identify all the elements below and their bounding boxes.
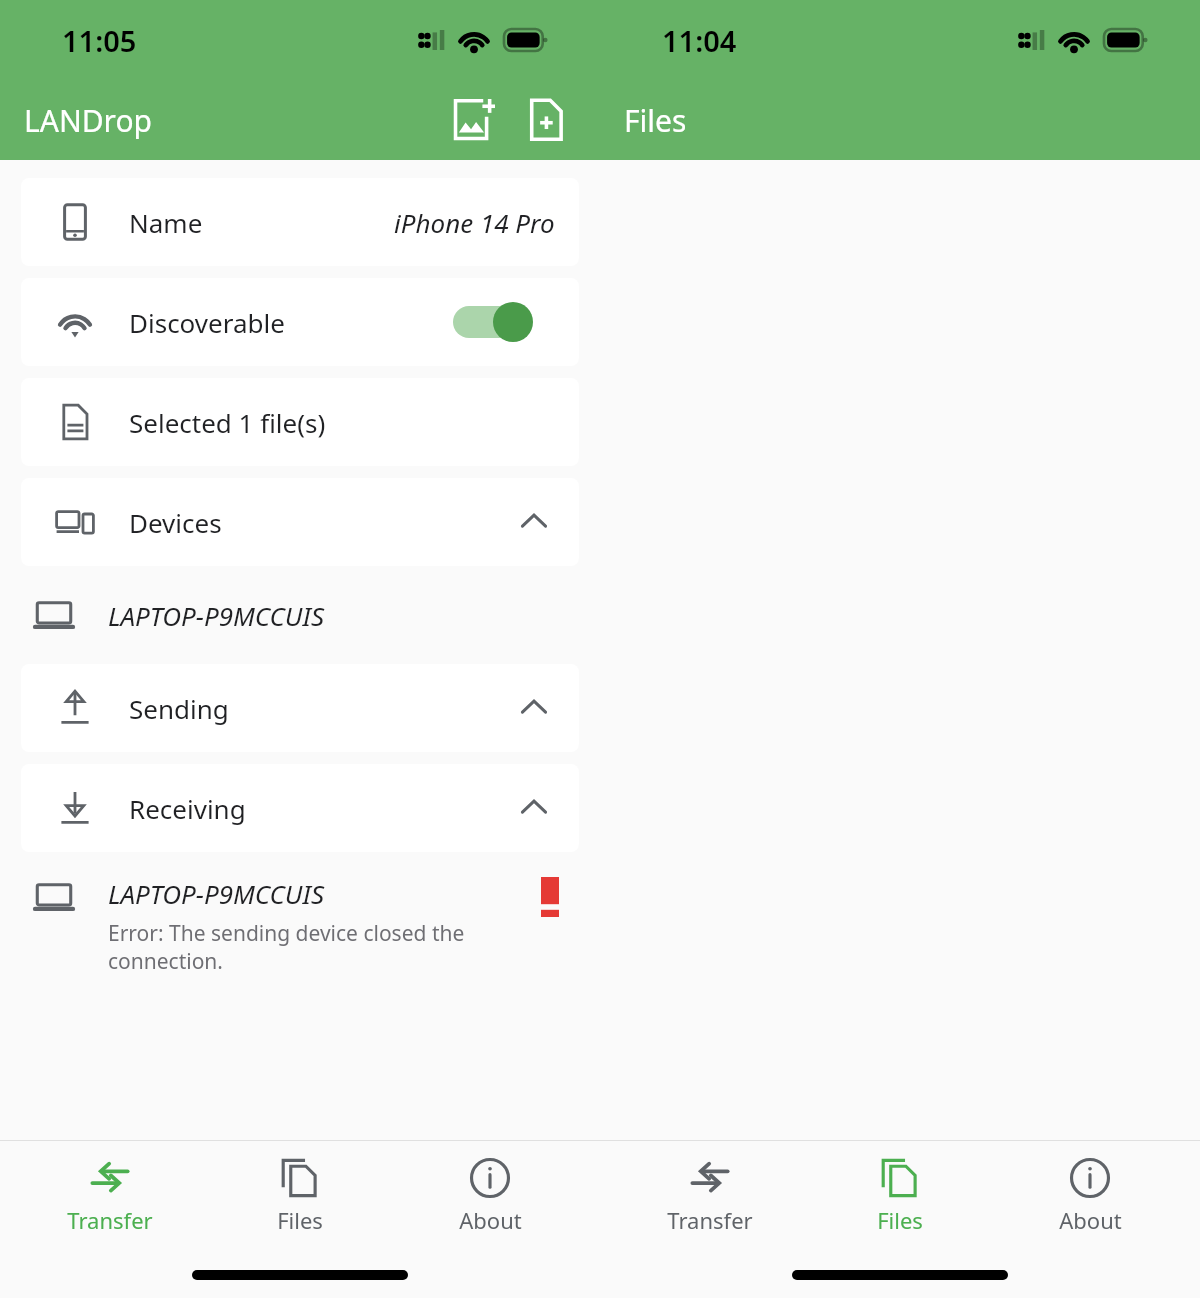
button[interactable]: Add image — [438, 84, 510, 156]
button[interactable]: Transfer — [30, 1141, 190, 1241]
button[interactable]: Sending — [21, 664, 579, 752]
button[interactable]: LAPTOP-P9MCCUIS — [0, 862, 600, 972]
button[interactable]: Devices — [21, 478, 579, 566]
staticText: Files — [624, 100, 687, 141]
staticText: Transfer — [67, 1205, 153, 1235]
staticText: About — [459, 1205, 522, 1235]
staticText: LAPTOP-P9MCCUIS — [108, 598, 325, 633]
button[interactable]: Files — [220, 1141, 380, 1241]
staticText: Receiving — [129, 791, 246, 826]
staticText: Files — [277, 1205, 323, 1235]
button[interactable]: Name — [21, 178, 579, 266]
staticText: LANDrop — [24, 100, 152, 141]
button[interactable]: About — [1010, 1141, 1170, 1241]
button[interactable]: Files — [820, 1141, 980, 1241]
staticText: LAPTOP-P9MCCUIS — [108, 876, 325, 911]
staticText: Error: The sending device closed the con… — [108, 919, 465, 972]
staticText: About — [1059, 1205, 1122, 1235]
button[interactable]: Selected 1 file(s) — [21, 378, 579, 466]
button[interactable]: Add file — [510, 84, 582, 156]
staticText: iPhone 14 Pro — [394, 205, 555, 240]
staticText: Name — [129, 205, 203, 240]
button[interactable] — [443, 298, 539, 346]
staticText: 11:05 — [62, 21, 137, 60]
staticText: Devices — [129, 505, 222, 540]
staticText: Files — [877, 1205, 923, 1235]
staticText: Sending — [129, 691, 229, 726]
button[interactable]: Transfer — [630, 1141, 790, 1241]
button[interactable]: About — [410, 1141, 570, 1241]
button[interactable]: Discoverable — [21, 278, 579, 366]
staticText: Discoverable — [129, 305, 285, 340]
staticText: Transfer — [667, 1205, 753, 1235]
button[interactable]: LAPTOP-P9MCCUIS — [0, 576, 600, 654]
staticText: Selected 1 file(s) — [129, 405, 326, 440]
button[interactable]: Receiving — [21, 764, 579, 852]
staticText: 11:04 — [662, 21, 737, 60]
